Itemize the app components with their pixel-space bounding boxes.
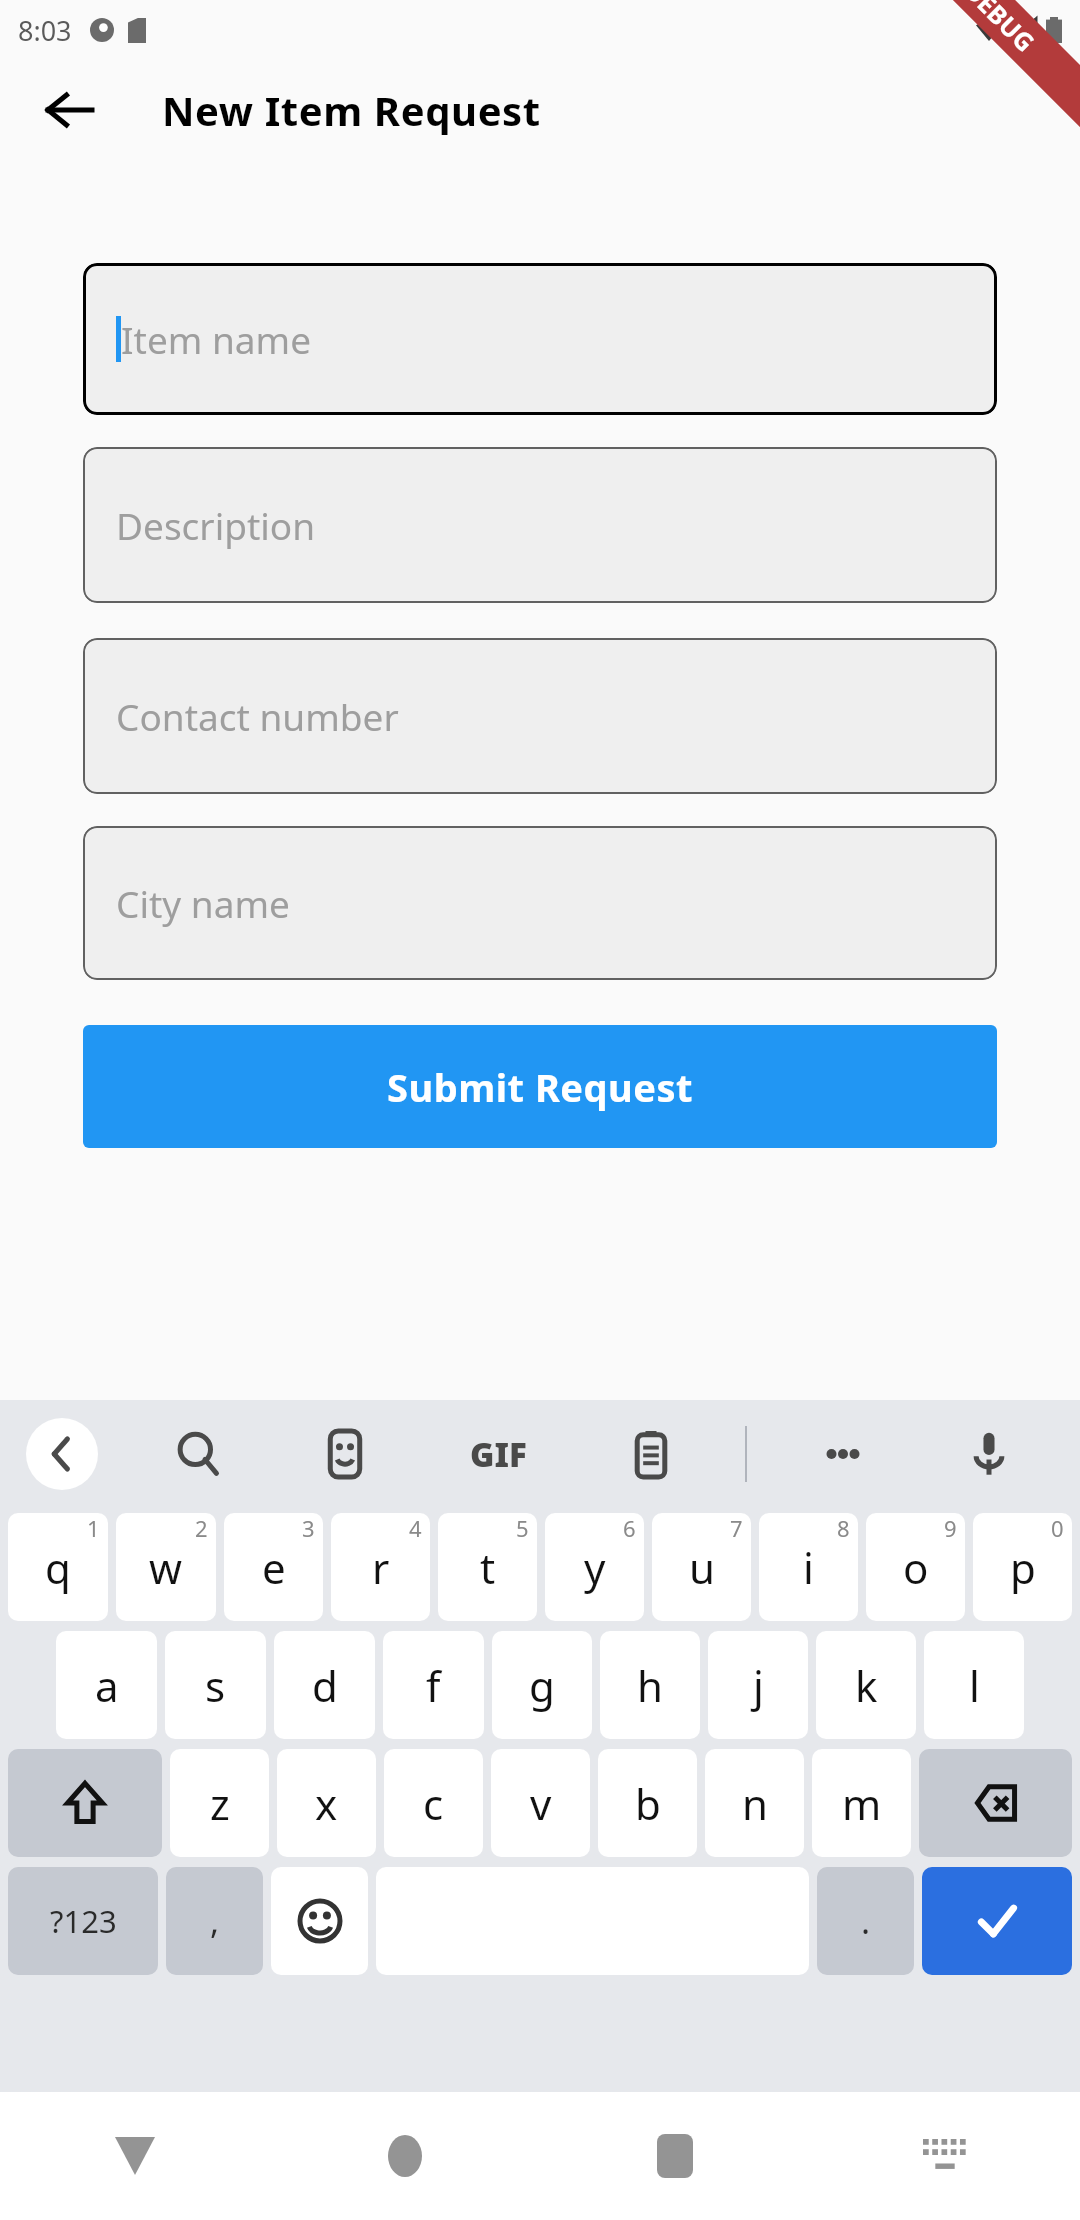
button[interactable]: Enter [922,1867,1072,1975]
staticText: 8:03 [18,12,72,49]
staticText: New Item Request [162,83,541,137]
button[interactable]: f [383,1631,484,1739]
button[interactable]: Switch keyboard [810,2092,1080,2220]
button[interactable]: City name [83,826,997,980]
button[interactable]: z [170,1749,269,1857]
staticText: v [530,1775,552,1832]
button[interactable]: . [817,1867,914,1975]
button[interactable]: b [598,1749,697,1857]
button[interactable]: n [705,1749,804,1857]
button[interactable]: q [8,1513,108,1621]
button[interactable]: GIF [455,1418,541,1490]
staticText: City name [116,878,290,928]
staticText: 9 [944,1513,957,1543]
button[interactable]: Submit Request [83,1025,997,1148]
staticText: 5 [516,1513,529,1543]
button[interactable]: w [116,1513,216,1621]
staticText: r [372,1539,390,1596]
button[interactable]: r [331,1513,430,1621]
staticText: 7 [730,1513,743,1543]
button[interactable]: s [165,1631,266,1739]
button[interactable]: Home [270,2092,540,2220]
button[interactable]: , [166,1867,263,1975]
staticText: c [423,1775,444,1832]
staticText: ?123 [50,1900,117,1942]
staticText: x [315,1775,338,1832]
staticText: 2 [195,1513,208,1543]
staticText: t [480,1539,496,1596]
button[interactable]: m [812,1749,911,1857]
staticText: 6 [623,1513,636,1543]
button[interactable]: x [277,1749,376,1857]
button[interactable]: Emoji [271,1867,368,1975]
staticText: h [637,1657,663,1714]
button[interactable]: Item name [83,263,997,415]
button[interactable]: Description [83,447,997,603]
staticText: GIF [470,1432,527,1477]
staticText: i [803,1539,814,1596]
staticText: q [45,1539,71,1596]
staticText: d [312,1657,338,1714]
button[interactable]: More options [807,1418,879,1490]
button[interactable]: t [438,1513,537,1621]
staticText: Submit Request [387,1061,694,1113]
staticText: s [205,1657,226,1714]
button[interactable]: v [491,1749,590,1857]
staticText: Contact number [116,691,399,741]
staticText: 1 [87,1513,100,1543]
button[interactable]: d [274,1631,375,1739]
button[interactable]: Hide toolbar [26,1418,98,1490]
staticText: l [969,1657,980,1714]
staticText: . [861,1898,871,1944]
staticText: DEBUG [958,0,1042,59]
button[interactable]: ?123 [8,1867,158,1975]
staticText: 3 [302,1513,315,1543]
staticText: a [95,1657,119,1714]
staticText: g [529,1657,555,1714]
staticText: 8 [837,1513,850,1543]
staticText: p [1010,1539,1036,1596]
button[interactable]: Clipboard [615,1418,687,1490]
staticText: m [842,1775,882,1832]
staticText: 4 [409,1513,422,1543]
button[interactable]: Search [163,1418,235,1490]
button[interactable]: Voice input [953,1418,1025,1490]
button[interactable]: g [492,1631,592,1739]
staticText: z [210,1775,230,1832]
staticText: n [742,1775,768,1832]
button[interactable]: a [56,1631,157,1739]
button[interactable]: j [708,1631,808,1739]
staticText: w [149,1539,183,1596]
staticText: k [855,1657,878,1714]
button[interactable]: Backspace [919,1749,1072,1857]
staticText: e [262,1539,286,1596]
staticText: y [584,1539,606,1596]
button[interactable]: k [816,1631,916,1739]
button[interactable]: l [924,1631,1024,1739]
button[interactable]: Back [34,74,106,146]
staticText: , [210,1898,220,1944]
button[interactable]: Back [0,2092,270,2220]
button[interactable]: e [224,1513,323,1621]
button[interactable]: o [866,1513,965,1621]
staticText: Item name [121,314,312,364]
staticText: f [426,1657,441,1714]
staticText: Description [116,500,316,550]
staticText: j [753,1657,764,1714]
staticText: 0 [1051,1513,1064,1543]
staticText: u [689,1539,715,1596]
button[interactable]: c [384,1749,483,1857]
staticText: o [903,1539,929,1596]
button[interactable]: u [652,1513,751,1621]
button[interactable]: Shift [8,1749,162,1857]
button[interactable]: Stickers [309,1418,381,1490]
button[interactable]: Contact number [83,638,997,794]
button[interactable]: p [973,1513,1072,1621]
button[interactable]: Recents [540,2092,810,2220]
staticText: b [635,1775,661,1832]
button[interactable]: h [600,1631,700,1739]
button[interactable]: i [759,1513,858,1621]
button[interactable]: y [545,1513,644,1621]
